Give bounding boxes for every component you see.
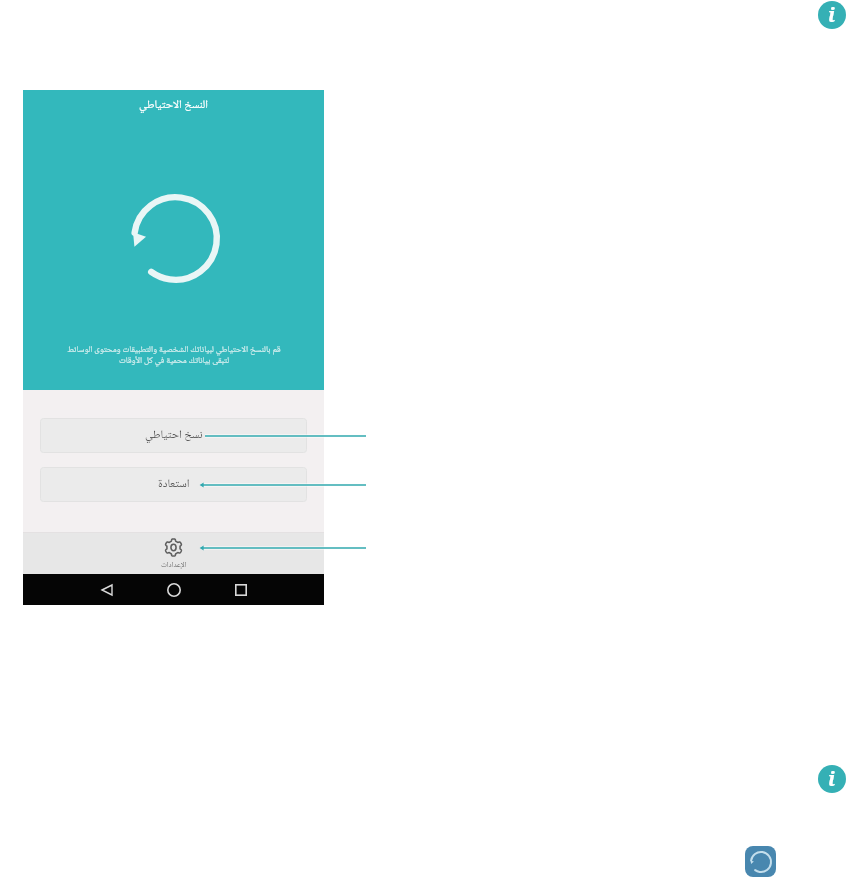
staticText: قم بالنسخ الاحتياطي لبياناتك الشخصية وال…: [67, 343, 281, 368]
button[interactable]: نسخ احتياطي: [40, 418, 307, 453]
button[interactable]: Backup app: [745, 846, 776, 877]
button[interactable]: Information: [818, 1, 846, 29]
button[interactable]: Home: [159, 575, 189, 605]
staticText: الإعدادات: [161, 559, 187, 572]
staticText: نسخ احتياطي: [145, 426, 203, 446]
button[interactable]: استعادة: [40, 467, 307, 502]
staticText: i: [828, 1, 836, 28]
staticText: النسخ الاحتياطي: [139, 96, 209, 116]
button[interactable]: Back: [92, 575, 122, 605]
staticText: استعادة: [158, 475, 190, 495]
button[interactable]: Information: [818, 765, 846, 793]
staticText: i: [828, 765, 836, 792]
button[interactable]: Recents: [226, 575, 256, 605]
button[interactable]: الإعدادات: [23, 533, 324, 574]
